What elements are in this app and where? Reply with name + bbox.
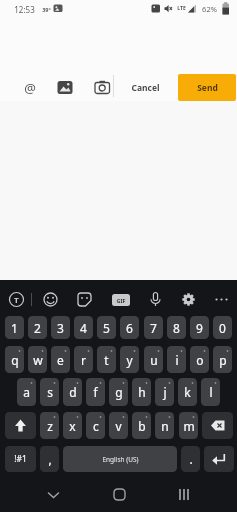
button[interactable]: 0	[213, 316, 232, 339]
button[interactable]: r	[74, 346, 93, 373]
button[interactable]: 4	[74, 316, 93, 339]
button[interactable]: 5	[97, 316, 116, 339]
button[interactable]	[94, 79, 111, 96]
button[interactable]: Cancel	[126, 78, 164, 97]
staticText: b	[138, 418, 146, 434]
button[interactable]: 7	[144, 316, 163, 339]
staticText: e	[57, 352, 64, 368]
staticText: d	[69, 384, 77, 400]
button[interactable]: ,	[40, 446, 59, 472]
button[interactable]: w	[28, 346, 47, 373]
staticText: 39°	[42, 6, 51, 13]
staticText: l	[209, 384, 213, 400]
button[interactable]: .	[181, 446, 200, 472]
staticText: u	[150, 352, 158, 368]
button[interactable]: x	[63, 412, 82, 439]
button[interactable]: q	[5, 346, 24, 373]
button[interactable]: n	[155, 412, 174, 439]
staticText: 12:53	[14, 4, 35, 15]
button[interactable]: e	[51, 346, 70, 373]
staticText: y	[126, 352, 133, 368]
staticText: 5	[103, 320, 110, 336]
button[interactable]: s	[40, 378, 59, 406]
button[interactable]	[145, 289, 166, 310]
staticText: 3	[57, 320, 64, 336]
button[interactable]	[74, 289, 95, 310]
button[interactable]: 2	[28, 316, 47, 339]
button[interactable]: 1	[5, 316, 24, 339]
staticText: x	[69, 418, 76, 434]
staticText: o	[196, 352, 204, 368]
button[interactable]: u	[144, 346, 163, 373]
staticText: s	[47, 384, 53, 400]
button[interactable]	[202, 412, 233, 439]
button[interactable]	[211, 289, 232, 310]
button[interactable]: l	[201, 378, 220, 406]
staticText: 0	[219, 320, 226, 336]
button[interactable]	[56, 79, 74, 96]
button[interactable]: T	[6, 289, 27, 310]
staticText: p	[219, 352, 227, 368]
staticText: ,	[48, 451, 52, 467]
button[interactable]	[178, 289, 199, 310]
button[interactable]: GIF	[112, 294, 130, 306]
staticText: 4	[80, 320, 87, 336]
button[interactable]: t	[97, 346, 116, 373]
staticText: f	[93, 384, 98, 400]
staticText: LTE	[177, 5, 186, 12]
button[interactable]: z	[40, 412, 59, 439]
button[interactable]: v	[109, 412, 128, 439]
button[interactable]: f	[86, 378, 105, 406]
staticText: English (US)	[102, 455, 139, 464]
staticText: q	[11, 352, 19, 368]
button[interactable]	[173, 484, 196, 506]
staticText: !#1	[14, 453, 27, 465]
button[interactable]: c	[86, 412, 105, 439]
button[interactable]: o	[190, 346, 209, 373]
button[interactable]: b	[132, 412, 151, 439]
staticText: h	[138, 384, 146, 400]
button[interactable]: English (US)	[63, 446, 177, 472]
button[interactable]	[204, 446, 234, 472]
button[interactable]	[108, 484, 131, 506]
button[interactable]: y	[120, 346, 139, 373]
button[interactable]: @	[21, 79, 39, 96]
button[interactable]: 8	[167, 316, 186, 339]
button[interactable]	[42, 484, 65, 506]
staticText: r	[81, 352, 86, 368]
button[interactable]: !#1	[5, 446, 36, 472]
button[interactable]: d	[63, 378, 82, 406]
staticText: g	[115, 384, 123, 400]
button[interactable]: Send	[178, 74, 236, 101]
staticText: a	[23, 384, 30, 400]
staticText: k	[184, 384, 191, 400]
staticText: GIF	[116, 297, 126, 304]
button[interactable]: a	[17, 378, 36, 406]
staticText: m	[183, 418, 195, 434]
staticText: t	[104, 352, 109, 368]
button[interactable]: k	[178, 378, 197, 406]
staticText: n	[161, 418, 169, 434]
staticText: 6	[126, 320, 133, 336]
button[interactable]	[5, 412, 36, 439]
button[interactable]: h	[132, 378, 151, 406]
staticText: j	[163, 384, 167, 400]
staticText: z	[47, 418, 53, 434]
button[interactable]: p	[213, 346, 232, 373]
staticText: .	[189, 451, 193, 467]
button[interactable]: 3	[51, 316, 70, 339]
button[interactable]: g	[109, 378, 128, 406]
staticText: 9	[196, 320, 203, 336]
staticText: i	[175, 352, 179, 368]
button[interactable]: i	[167, 346, 186, 373]
button[interactable]	[40, 289, 61, 310]
button[interactable]: m	[179, 412, 198, 439]
staticText: 1	[11, 320, 18, 336]
staticText: c	[93, 418, 99, 434]
button[interactable]: j	[155, 378, 174, 406]
staticText: 7	[150, 320, 157, 336]
button[interactable]: 9	[190, 316, 209, 339]
staticText: 8	[173, 320, 180, 336]
button[interactable]: 6	[120, 316, 139, 339]
